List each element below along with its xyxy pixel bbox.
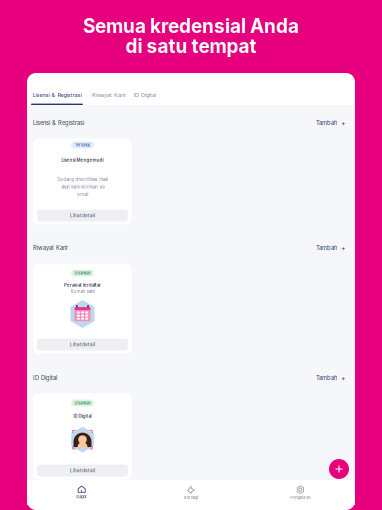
staticText: ID Digital (33, 374, 57, 381)
button[interactable]: Share (136, 477, 246, 507)
staticText: di satu tempat (125, 34, 256, 57)
button[interactable]: Lihat detail (37, 209, 128, 221)
staticText: + (341, 244, 345, 252)
button[interactable]: Tambah (316, 240, 345, 256)
staticText: Tambah (316, 244, 337, 251)
button[interactable]: Lihat detail (37, 338, 128, 350)
staticText: Perawat terdaftar (64, 282, 101, 288)
button[interactable]: Tambah (316, 115, 345, 131)
button[interactable]: ID Digital (134, 91, 156, 105)
staticText: Lihat detail (70, 468, 95, 473)
staticText: Pengaturan (290, 495, 310, 500)
staticText: Sedang diverifikasi. Hasil akan kami kir… (57, 177, 108, 197)
staticText: Lisensi & Registrasi (33, 119, 84, 126)
button[interactable]: Lisensi & Registrasi (31, 91, 83, 105)
staticText: Lihat detail (70, 213, 95, 218)
staticText: Lisensi & Registrasi (32, 92, 81, 98)
button[interactable]: Home (27, 477, 136, 507)
button[interactable]: Settings (246, 477, 355, 507)
staticText: Rumah sakit (70, 289, 94, 294)
staticText: Tambah (316, 374, 337, 381)
staticText: + (341, 119, 345, 127)
button[interactable]: Tambah (316, 370, 345, 386)
staticText: Disahkan (74, 271, 90, 275)
staticText: Lisensi Mengemudi (61, 157, 103, 163)
staticText: Riwayat Karir (33, 244, 68, 251)
staticText: Tambah (316, 119, 337, 126)
staticText: Riwayat Karir (92, 92, 126, 98)
staticText: Tertunda (75, 143, 90, 147)
button[interactable]: Add (328, 458, 350, 480)
staticText: Disahkan (74, 401, 90, 405)
staticText: Lihat detail (70, 342, 95, 347)
staticText: ID Digital (73, 413, 91, 419)
staticText: + (341, 374, 345, 382)
button[interactable]: Lihat detail (37, 464, 128, 476)
staticText: ID Digital (134, 92, 156, 98)
staticText: Semua kredensial Anda (83, 14, 299, 37)
staticText: Berbagi (184, 495, 198, 500)
staticText: Rapor (76, 494, 87, 499)
button[interactable]: Riwayat Karir (92, 91, 126, 105)
